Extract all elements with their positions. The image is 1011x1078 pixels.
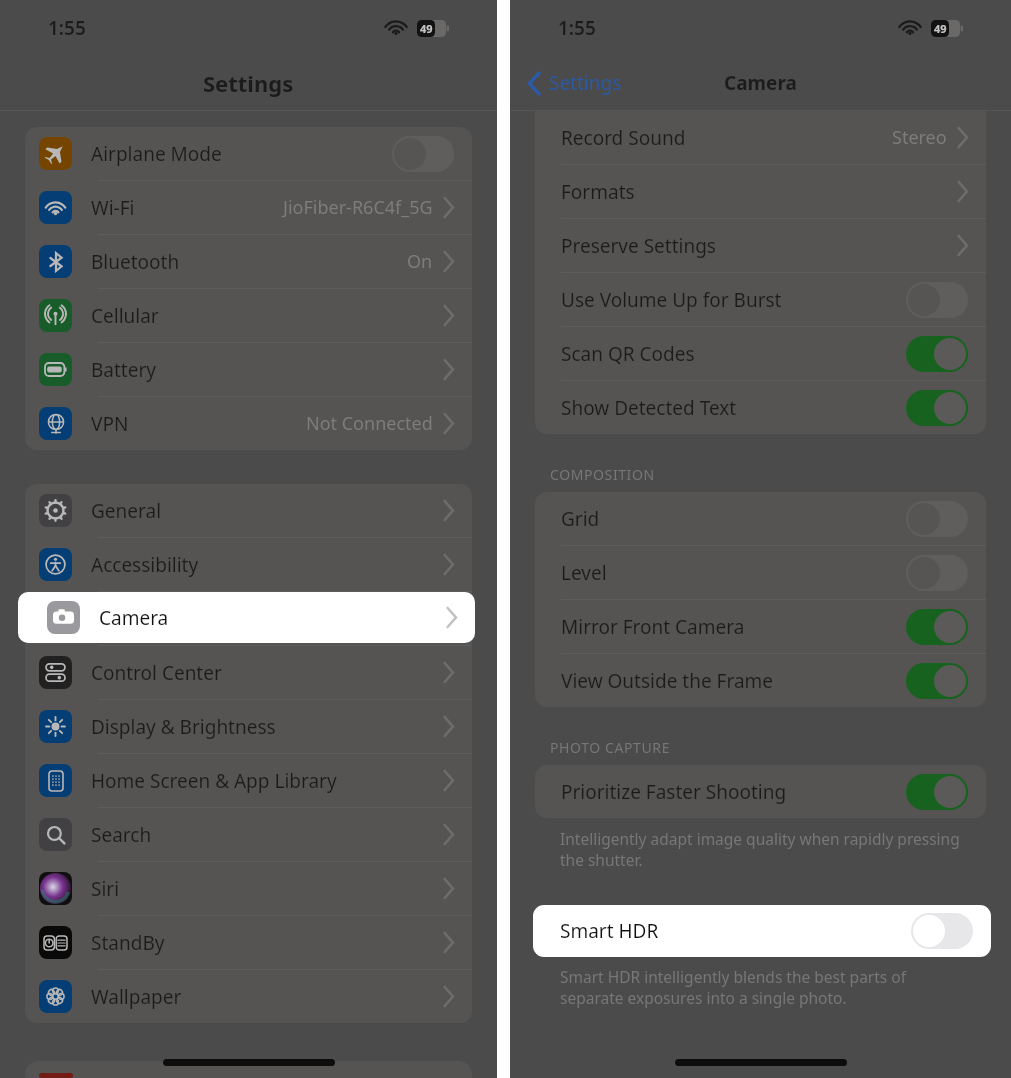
button[interactable]: Siri [25, 862, 472, 915]
staticText: Search [91, 822, 152, 848]
staticText: Grid [561, 506, 600, 532]
button[interactable]: Bluetooth [25, 235, 472, 288]
staticText: Intelligently adapt image quality when r… [560, 828, 960, 871]
button[interactable]: Record Sound [535, 111, 986, 164]
staticText: Home Screen & App Library [91, 768, 337, 794]
staticText: Camera [99, 605, 169, 631]
staticText: 1:55 [48, 15, 86, 41]
button[interactable]: Toggle [906, 555, 968, 591]
staticText: Cellular [91, 303, 159, 329]
button[interactable]: Formats [535, 165, 986, 218]
button[interactable]: Toggle [906, 282, 968, 318]
staticText: Preserve Settings [561, 233, 716, 259]
staticText: Camera [724, 70, 797, 96]
button[interactable]: General [25, 484, 472, 537]
button[interactable]: Preserve Settings [535, 219, 986, 272]
button[interactable]: Display & Brightness [25, 700, 472, 753]
staticText: On [407, 249, 433, 274]
staticText: Settings [549, 70, 622, 96]
button[interactable]: Grid [535, 492, 986, 545]
button[interactable]: Toggle [906, 663, 968, 699]
button[interactable]: Cellular [25, 289, 472, 342]
staticText: Accessibility [91, 552, 199, 578]
staticText: PHOTO CAPTURE [550, 738, 671, 757]
staticText: Wi-Fi [91, 195, 135, 221]
staticText: Smart HDR [560, 918, 659, 944]
button[interactable]: Settings [510, 70, 628, 96]
button[interactable]: VPN [25, 397, 472, 450]
button[interactable]: Airplane Mode [25, 127, 472, 180]
staticText: 49 [934, 21, 947, 36]
staticText: JioFiber-R6C4f_5G [283, 195, 433, 220]
staticText: Scan QR Codes [561, 341, 695, 367]
button[interactable]: Toggle [906, 609, 968, 645]
staticText: Record Sound [561, 125, 686, 151]
staticText: Not Connected [306, 411, 433, 436]
button[interactable]: Control Center [25, 646, 472, 699]
staticText: Smart HDR intelligently blends the best … [560, 966, 906, 1009]
staticText: 1:55 [558, 15, 596, 41]
button[interactable]: Toggle [911, 913, 973, 949]
button[interactable]: View Outside the Frame [535, 654, 986, 707]
button[interactable]: Toggle [906, 336, 968, 372]
staticText: Use Volume Up for Burst [561, 287, 782, 313]
staticText: 49 [420, 21, 433, 36]
button[interactable]: Wi-Fi [25, 181, 472, 234]
staticText: Formats [561, 179, 635, 205]
staticText: Mirror Front Camera [561, 614, 745, 640]
staticText: Display & Brightness [91, 714, 276, 740]
button[interactable]: Accessibility [25, 538, 472, 591]
button[interactable]: StandBy [25, 916, 472, 969]
button[interactable]: Toggle [906, 774, 968, 810]
staticText: Wallpaper [91, 984, 182, 1010]
staticText: Stereo [892, 125, 947, 150]
button[interactable]: Camera [18, 592, 475, 643]
button[interactable]: Show Detected Text [535, 381, 986, 434]
button[interactable]: Toggle [906, 390, 968, 426]
button[interactable]: Toggle [392, 136, 454, 172]
button[interactable]: Wallpaper [25, 970, 472, 1023]
button[interactable]: Battery [25, 343, 472, 396]
staticText: Level [561, 560, 607, 586]
button[interactable]: Prioritize Faster Shooting [535, 765, 986, 818]
staticText: Prioritize Faster Shooting [561, 779, 787, 805]
button[interactable]: Use Volume Up for Burst [535, 273, 986, 326]
staticText: View Outside the Frame [561, 668, 774, 694]
staticText: Battery [91, 357, 156, 383]
staticText: COMPOSITION [550, 465, 655, 484]
button[interactable]: Search [25, 808, 472, 861]
staticText: Show Detected Text [561, 395, 737, 421]
staticText: Siri [91, 876, 120, 902]
button[interactable]: Mirror Front Camera [535, 600, 986, 653]
staticText: Control Center [91, 660, 222, 686]
button[interactable]: Home Screen & App Library [25, 754, 472, 807]
staticText: StandBy [91, 930, 165, 956]
staticText: General [91, 498, 162, 524]
button[interactable]: Smart HDR [533, 905, 991, 957]
staticText: Settings [203, 68, 294, 98]
staticText: Bluetooth [91, 249, 180, 275]
staticText: VPN [91, 411, 129, 437]
button[interactable]: Level [535, 546, 986, 599]
staticText: Airplane Mode [91, 141, 222, 167]
button[interactable]: Scan QR Codes [535, 327, 986, 380]
button[interactable]: Toggle [906, 501, 968, 537]
